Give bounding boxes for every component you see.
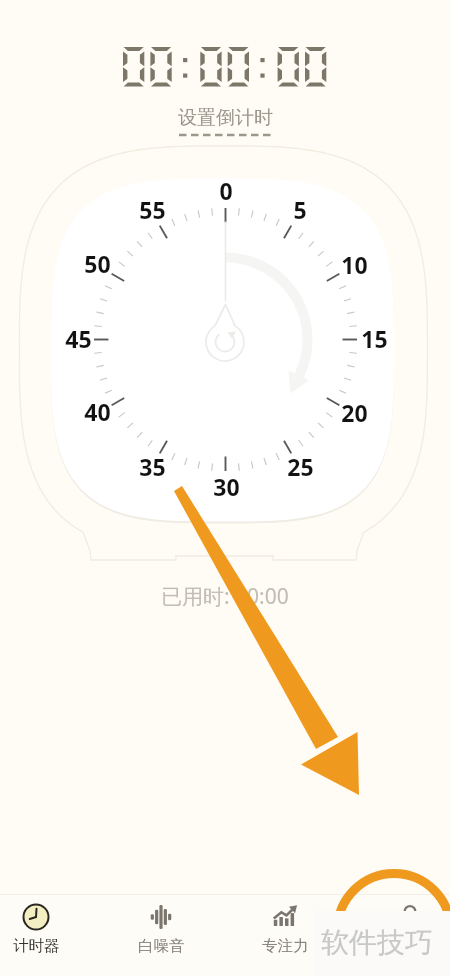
staticText: 已用时: 00:00 [161,582,289,611]
staticText: 20 [341,397,368,427]
button[interactable]: 白噪音 [130,894,192,975]
staticText: 15 [361,323,388,353]
staticText: 30 [213,471,240,501]
staticText: 计时器 [13,936,60,956]
staticText: 设置倒计时 [178,106,273,130]
staticText: 10 [341,249,368,279]
button[interactable]: 计时器 [5,894,67,975]
staticText: 40 [84,396,111,426]
staticText: 0 [219,175,233,205]
button[interactable]: 我的 [379,894,441,975]
staticText: 50 [84,248,111,278]
staticText: 专注力 [262,936,309,956]
staticText: 白噪音 [138,936,185,956]
staticText: 35 [139,451,166,481]
staticText: 5 [293,194,307,224]
button[interactable]: 专注力 [254,894,316,975]
staticText: 55 [139,194,166,224]
staticText: 软件技巧 [321,925,433,960]
staticText: 45 [65,323,92,353]
staticText: 25 [287,451,314,481]
staticText: 我的 [395,936,426,956]
